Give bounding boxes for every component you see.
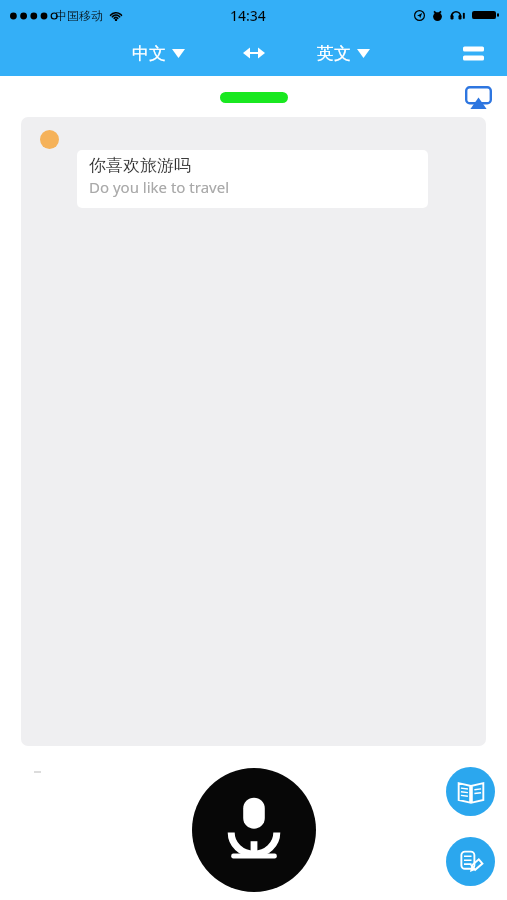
staticText: 中国移动 <box>55 8 103 23</box>
button[interactable]: AirPlay <box>460 79 496 115</box>
staticText: 你喜欢旅游吗 <box>89 155 191 176</box>
staticText: 英文 <box>317 43 351 64</box>
button[interactable]: Swap languages <box>233 32 275 74</box>
button[interactable]: Record voice <box>192 768 316 892</box>
button[interactable]: Menu <box>453 33 493 73</box>
button[interactable]: 英文 <box>317 43 370 64</box>
staticText: 中文 <box>132 43 166 64</box>
button[interactable]: 你喜欢旅游吗 <box>77 150 428 208</box>
staticText: 14:34 <box>230 6 266 25</box>
button[interactable]: Text input <box>446 837 495 886</box>
button[interactable]: Phrasebook <box>446 767 495 816</box>
button[interactable]: 中文 <box>132 43 185 64</box>
staticText: Do you like to travel <box>89 177 229 197</box>
